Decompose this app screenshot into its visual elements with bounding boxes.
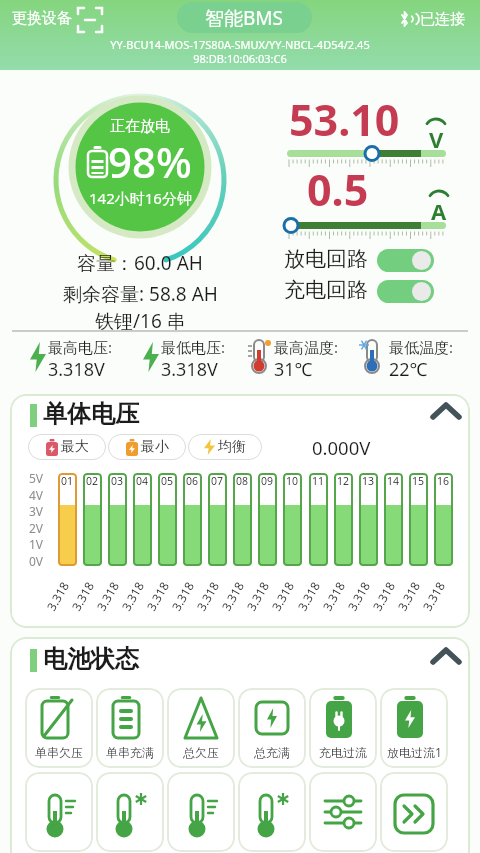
- staticText: 10: [286, 474, 299, 488]
- staticText: 12: [337, 474, 350, 488]
- staticText: 最高电压:: [48, 337, 113, 357]
- staticText: 3.318: [319, 579, 348, 613]
- staticText: 铁锂/16 串: [95, 308, 186, 334]
- button[interactable]: 充电过流: [309, 688, 377, 768]
- staticText: 均衡: [218, 438, 246, 456]
- staticText: 3.318: [193, 579, 222, 613]
- button[interactable]: [431, 402, 461, 420]
- staticText: 01: [61, 474, 74, 488]
- staticText: 05: [161, 474, 174, 488]
- staticText: 3.318V: [48, 357, 105, 382]
- staticText: A: [431, 196, 447, 226]
- staticText: 3.318: [369, 579, 398, 613]
- staticText: 06: [186, 474, 199, 488]
- staticText: 3.318: [243, 579, 272, 613]
- staticText: 16: [437, 474, 450, 488]
- staticText: 3.318: [394, 579, 423, 613]
- staticText: 4V: [29, 487, 44, 503]
- staticText: 31℃: [274, 357, 313, 382]
- button[interactable]: 单串欠压: [25, 688, 93, 768]
- button[interactable]: 单串充满: [96, 688, 164, 768]
- staticText: 142小时16分钟: [89, 188, 192, 208]
- staticText: 3.318: [268, 579, 297, 613]
- staticText: 单串欠压: [35, 745, 83, 760]
- staticText: 3.318: [419, 579, 448, 613]
- button[interactable]: 已连接: [396, 8, 465, 30]
- staticText: 最低电压:: [161, 337, 226, 357]
- staticText: 3.318: [68, 579, 97, 613]
- staticText: 剩余容量: 58.8 AH: [63, 281, 218, 307]
- staticText: 最小: [141, 438, 169, 456]
- staticText: 3.318V: [161, 357, 218, 382]
- staticText: 已连接: [420, 10, 465, 29]
- staticText: 3.318: [93, 579, 122, 613]
- staticText: 3.318: [143, 579, 172, 613]
- button[interactable]: [25, 772, 93, 852]
- button[interactable]: [167, 772, 235, 852]
- staticText: 3.318: [168, 579, 197, 613]
- staticText: 22℃: [389, 357, 428, 382]
- staticText: 3V: [29, 503, 44, 519]
- staticText: 0.5: [307, 160, 369, 219]
- staticText: 3.318: [118, 579, 147, 613]
- staticText: 单体电压: [43, 399, 139, 429]
- staticText: 最低温度:: [389, 337, 454, 357]
- staticText: YY-BCU14-MOS-17S80A-SMUX/YY-NBCL-4D54/2.…: [0, 37, 480, 52]
- staticText: 智能BMS: [205, 5, 284, 31]
- staticText: 充电过流: [319, 745, 367, 760]
- staticText: 3.318: [218, 579, 247, 613]
- staticText: 98:DB:10:06:03:C6: [0, 51, 480, 66]
- staticText: 53.10: [289, 90, 400, 149]
- button[interactable]: [431, 647, 461, 665]
- staticText: 02: [86, 474, 99, 488]
- staticText: 最大: [61, 438, 89, 456]
- button[interactable]: 均衡: [188, 434, 262, 460]
- button[interactable]: [309, 772, 377, 852]
- staticText: 07: [211, 474, 224, 488]
- staticText: 3.318: [344, 579, 373, 613]
- staticText: 0.000V: [312, 435, 371, 460]
- staticText: 单串充满: [106, 745, 154, 760]
- staticText: 04: [136, 474, 149, 488]
- staticText: 3.318: [294, 579, 323, 613]
- button[interactable]: 总充满: [238, 688, 306, 768]
- staticText: 08: [236, 474, 249, 488]
- staticText: 总充满: [254, 745, 290, 760]
- staticText: 容量：60.0 AH: [77, 250, 203, 276]
- staticText: 09: [261, 474, 274, 488]
- staticText: 15: [412, 474, 425, 488]
- button[interactable]: [238, 772, 306, 852]
- button[interactable]: [78, 8, 102, 32]
- button[interactable]: 放电过流1: [380, 688, 448, 768]
- button[interactable]: 更换设备: [12, 9, 72, 28]
- staticText: 98%: [108, 133, 192, 190]
- staticText: 总欠压: [183, 745, 219, 760]
- staticText: 最高温度:: [274, 337, 339, 357]
- staticText: 放电回路: [284, 246, 368, 272]
- button[interactable]: [377, 249, 434, 272]
- staticText: 放电过流1: [387, 744, 442, 760]
- staticText: 13: [362, 474, 375, 488]
- button[interactable]: [96, 772, 164, 852]
- staticText: 电池状态: [43, 644, 139, 674]
- staticText: 1V: [29, 536, 44, 552]
- button[interactable]: [377, 280, 434, 303]
- button[interactable]: [380, 772, 448, 852]
- staticText: 0V: [29, 553, 44, 569]
- staticText: 03: [111, 474, 124, 488]
- staticText: 11: [312, 474, 325, 488]
- button[interactable]: 总欠压: [167, 688, 235, 768]
- staticText: 14: [387, 474, 400, 488]
- staticText: 2V: [29, 520, 44, 536]
- staticText: 充电回路: [284, 277, 368, 303]
- staticText: 正在放电: [110, 117, 170, 136]
- staticText: 3.318: [43, 579, 72, 613]
- staticText: V: [429, 124, 444, 154]
- button[interactable]: 最小: [108, 434, 186, 460]
- button[interactable]: 智能BMS: [177, 2, 312, 33]
- button[interactable]: 最大: [28, 434, 106, 460]
- staticText: 5V: [29, 470, 44, 486]
